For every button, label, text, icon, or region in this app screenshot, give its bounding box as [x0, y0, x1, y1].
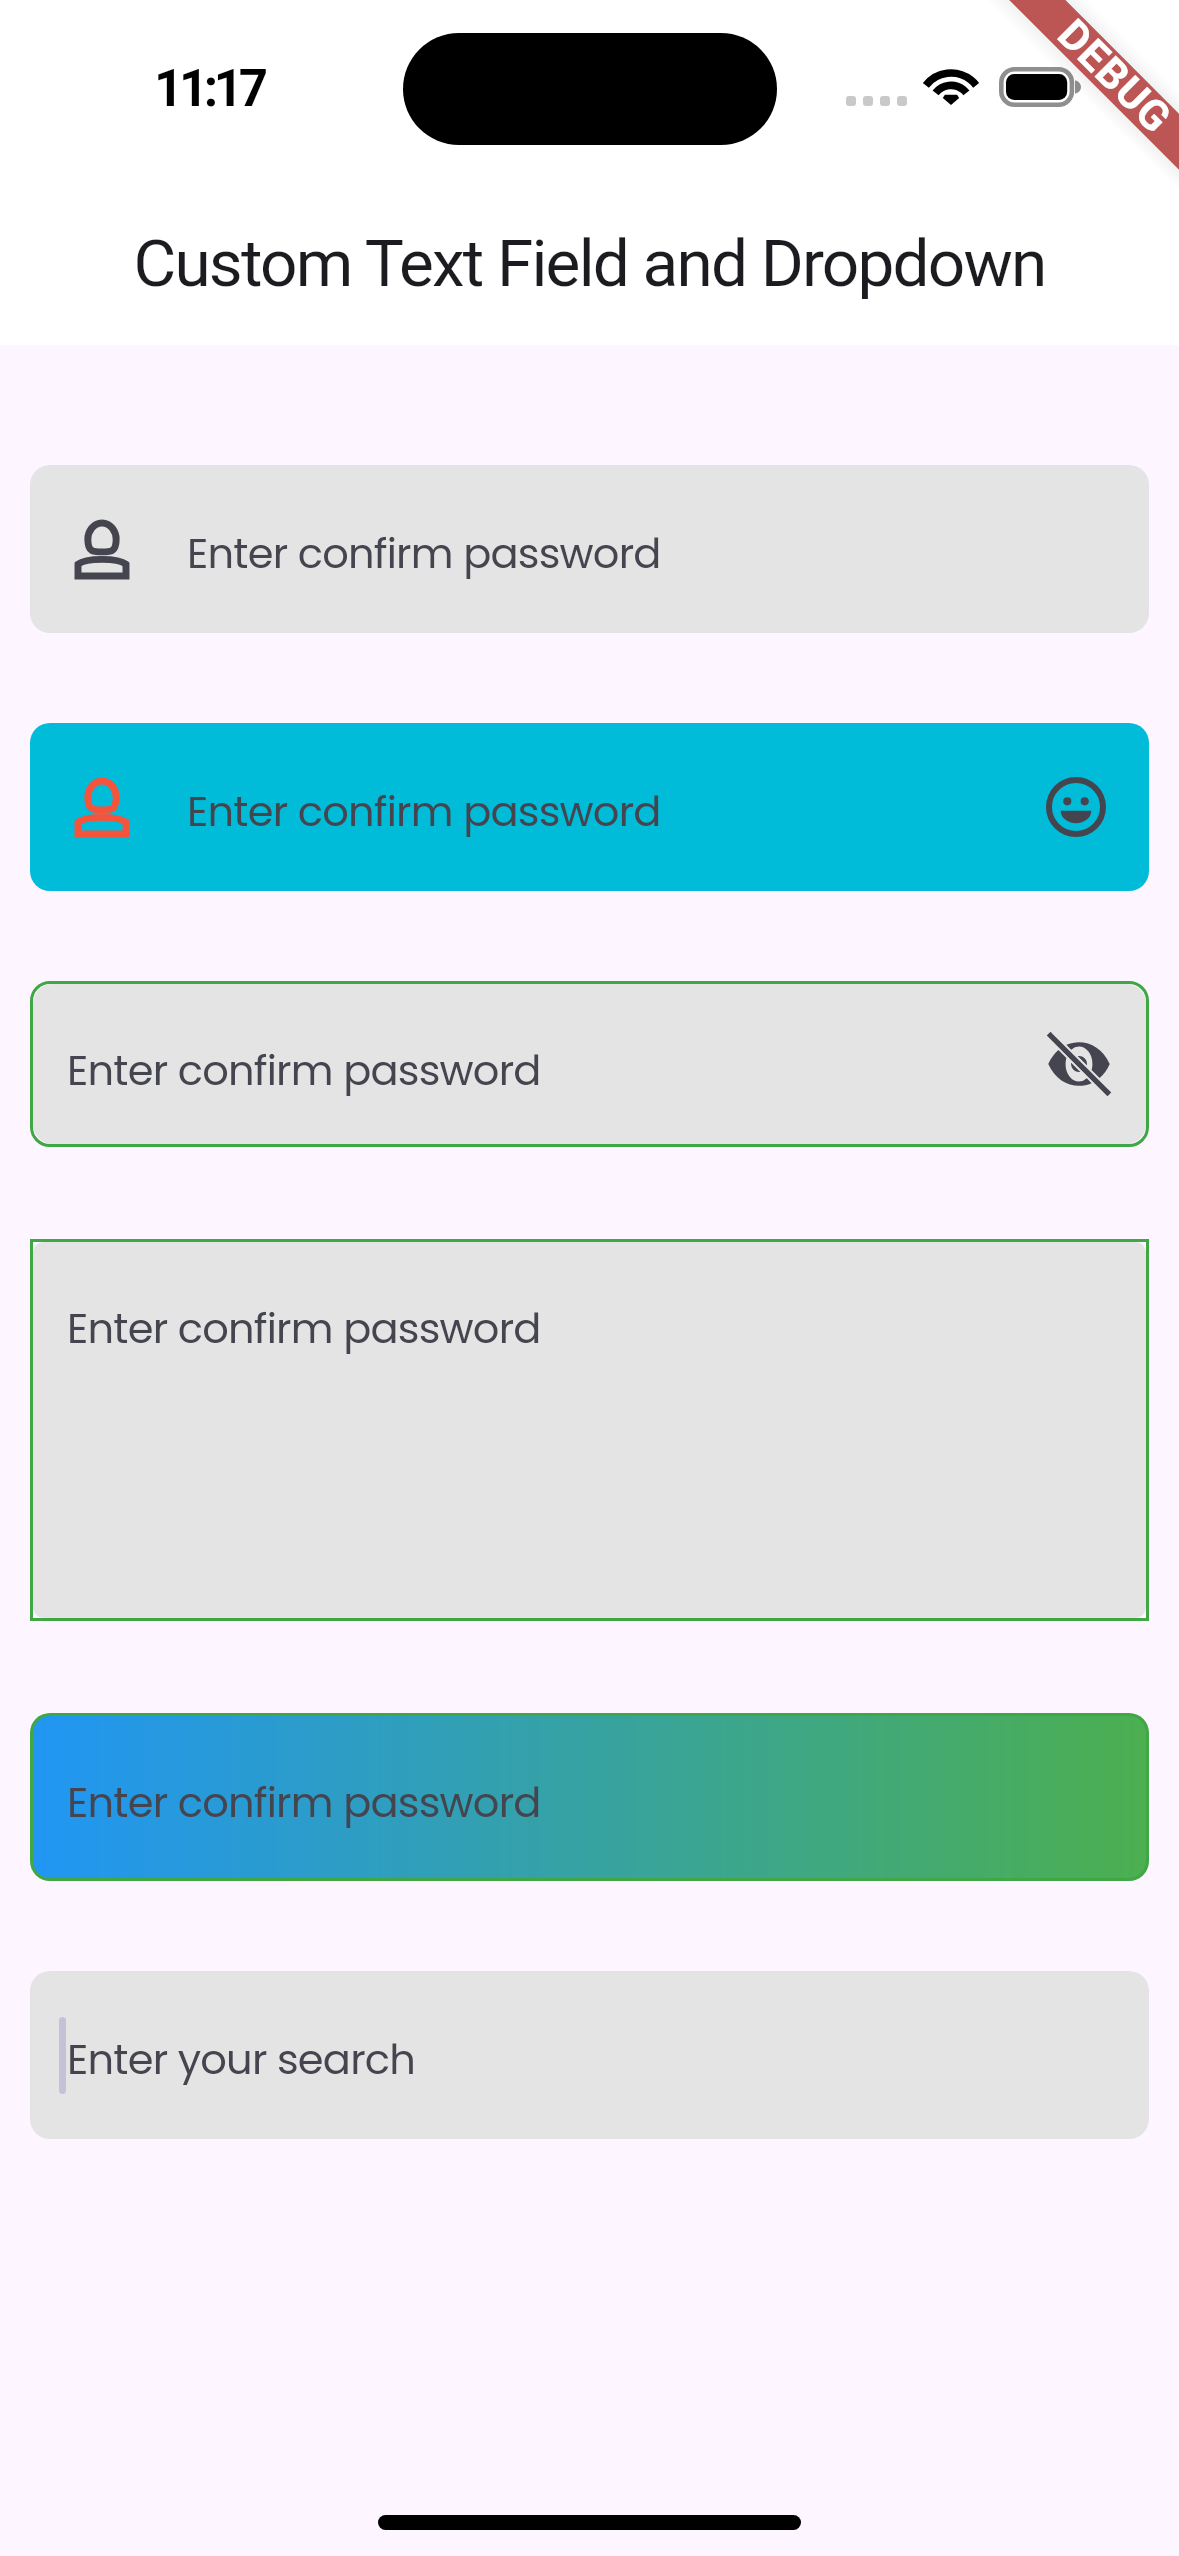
staticText: Enter confirm password — [67, 1041, 541, 1099]
staticText: Enter confirm password — [67, 1299, 541, 1357]
button[interactable]: Emoji — [1032, 763, 1120, 851]
staticText: Enter confirm password — [187, 782, 661, 840]
button[interactable]: Enter your search — [30, 1971, 1149, 2139]
staticText: Enter your search — [67, 2030, 416, 2088]
staticText: Enter confirm password — [187, 524, 661, 582]
staticText: Custom Text Field and Dropdown — [133, 225, 1046, 302]
button[interactable]: Enter confirm password — [30, 465, 1149, 633]
staticText: 11:17 — [154, 59, 264, 119]
button[interactable]: Enter confirm password — [33, 984, 1146, 1144]
button[interactable]: Enter confirm password — [33, 1716, 1146, 1878]
button[interactable]: Hide password — [1034, 1019, 1124, 1109]
button[interactable]: Enter confirm password — [33, 1242, 1146, 1618]
staticText: DEBUG — [1048, 10, 1179, 143]
staticText: Enter confirm password — [67, 1773, 541, 1831]
button[interactable]: Enter confirm password — [30, 723, 1149, 891]
